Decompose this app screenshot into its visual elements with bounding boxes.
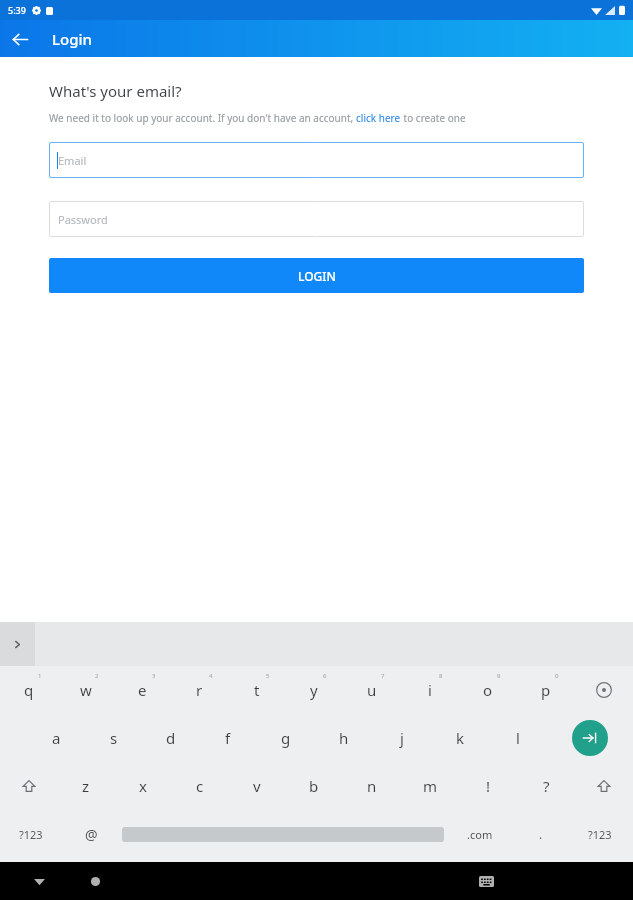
staticText: l: [516, 728, 520, 748]
button[interactable]: 3: [114, 666, 171, 714]
staticText: 5:39: [8, 4, 26, 16]
button[interactable]: 8: [401, 666, 459, 714]
button[interactable]: v: [228, 762, 285, 810]
staticText: k: [456, 728, 465, 748]
button[interactable]: x: [114, 762, 171, 810]
button[interactable]: !: [459, 762, 517, 810]
button[interactable]: ?123: [0, 810, 61, 858]
staticText: z: [82, 776, 90, 796]
button[interactable]: l: [489, 714, 547, 762]
button[interactable]: click here: [356, 111, 401, 125]
button[interactable]: 6: [285, 666, 343, 714]
staticText: Password: [58, 212, 108, 227]
staticText: p: [541, 680, 551, 700]
button[interactable]: ?: [517, 762, 575, 810]
staticText: e: [138, 680, 147, 700]
staticText: We need it to look up your account. If y…: [49, 111, 356, 125]
staticText: to create one: [401, 111, 466, 125]
staticText: n: [367, 776, 377, 796]
staticText: w: [80, 680, 92, 700]
staticText: u: [367, 680, 377, 700]
staticText: .com: [467, 827, 493, 842]
button[interactable]: h: [315, 714, 373, 762]
staticText: r: [196, 680, 203, 700]
button[interactable]: Space: [122, 810, 444, 858]
staticText: v: [253, 776, 261, 796]
button[interactable]: n: [343, 762, 401, 810]
staticText: 6: [323, 672, 327, 680]
button[interactable]: @: [61, 810, 122, 858]
staticText: ?123: [19, 827, 43, 842]
button[interactable]: .: [516, 810, 566, 858]
staticText: 8: [439, 672, 443, 680]
staticText: 3: [152, 672, 156, 680]
button[interactable]: j: [373, 714, 431, 762]
staticText: 7: [381, 672, 385, 680]
staticText: h: [339, 728, 349, 748]
staticText: y: [310, 680, 318, 700]
staticText: q: [24, 680, 34, 700]
button[interactable]: LOGIN: [49, 258, 584, 293]
button[interactable]: Backspace: [575, 666, 633, 714]
staticText: a: [52, 728, 61, 748]
button[interactable]: Email: [49, 142, 584, 178]
staticText: ?: [543, 776, 550, 796]
button[interactable]: a: [28, 714, 85, 762]
button[interactable]: Switch keyboard: [473, 868, 499, 894]
button[interactable]: c: [171, 762, 228, 810]
button[interactable]: k: [431, 714, 489, 762]
staticText: .: [539, 826, 543, 842]
button[interactable]: 1: [0, 666, 57, 714]
button[interactable]: ?123: [566, 810, 633, 858]
staticText: f: [225, 728, 231, 748]
button[interactable]: Password: [49, 201, 584, 237]
button[interactable]: b: [285, 762, 343, 810]
staticText: LOGIN: [298, 268, 336, 284]
staticText: g: [281, 728, 291, 748]
staticText: Login: [52, 29, 92, 49]
button[interactable]: f: [199, 714, 257, 762]
button[interactable]: Back: [6, 25, 34, 53]
staticText: 9: [497, 672, 501, 680]
button[interactable]: .com: [444, 810, 516, 858]
button[interactable]: 9: [459, 666, 517, 714]
button[interactable]: 7: [343, 666, 401, 714]
staticText: 5: [266, 672, 270, 680]
button[interactable]: 2: [57, 666, 114, 714]
button[interactable]: z: [57, 762, 114, 810]
button[interactable]: Shift: [575, 762, 633, 810]
staticText: m: [423, 776, 438, 796]
staticText: c: [196, 776, 204, 796]
staticText: x: [139, 776, 147, 796]
staticText: Email: [58, 153, 87, 168]
staticText: 4: [209, 672, 213, 680]
staticText: t: [254, 680, 260, 700]
button[interactable]: 0: [517, 666, 575, 714]
button[interactable]: m: [401, 762, 459, 810]
staticText: d: [166, 728, 176, 748]
button[interactable]: 4: [171, 666, 228, 714]
staticText: b: [309, 776, 319, 796]
staticText: ?123: [588, 827, 612, 842]
button[interactable]: 5: [228, 666, 285, 714]
button[interactable]: Shift: [0, 762, 57, 810]
staticText: 2: [95, 672, 99, 680]
button[interactable]: d: [142, 714, 199, 762]
staticText: s: [110, 728, 118, 748]
button[interactable]: Expand suggestions: [0, 622, 35, 666]
button[interactable]: Next: [547, 714, 633, 762]
button[interactable]: s: [85, 714, 142, 762]
staticText: j: [400, 728, 404, 748]
staticText: @: [85, 825, 98, 844]
staticText: What's your email?: [49, 81, 182, 101]
staticText: i: [428, 680, 432, 700]
staticText: 0: [555, 672, 559, 680]
staticText: 1: [38, 672, 42, 680]
button[interactable]: Hide keyboard: [26, 868, 52, 894]
button[interactable]: g: [257, 714, 315, 762]
staticText: o: [483, 680, 493, 700]
staticText: !: [486, 776, 491, 796]
button[interactable]: Home: [82, 868, 108, 894]
